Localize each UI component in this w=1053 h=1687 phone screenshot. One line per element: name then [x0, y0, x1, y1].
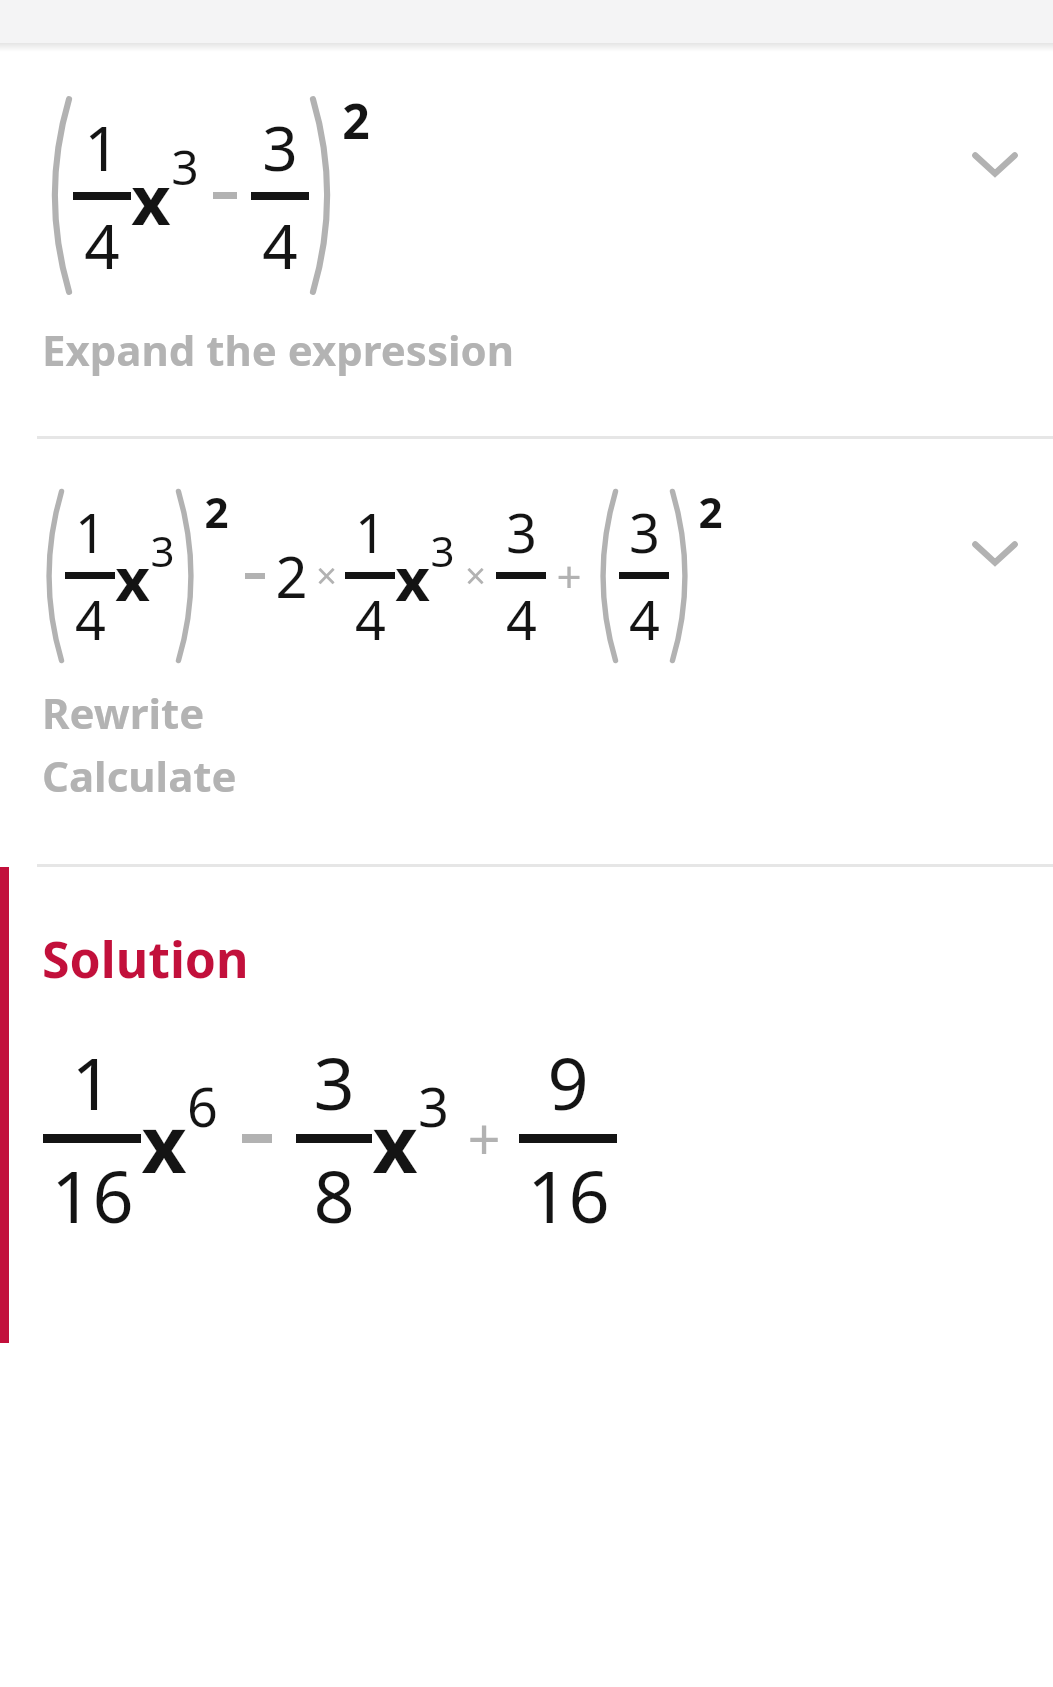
staticText: 3	[150, 522, 175, 579]
staticText: +	[556, 546, 582, 606]
staticText: x	[395, 537, 430, 619]
staticText: 3	[313, 1033, 355, 1131]
button[interactable]: Collapse step	[959, 517, 1031, 589]
staticText: Rewrite	[42, 684, 205, 741]
staticText: Calculate	[42, 747, 237, 804]
staticText: 4	[629, 582, 660, 656]
staticText: 3	[506, 495, 537, 569]
staticText: 1	[75, 495, 106, 569]
staticText: 3	[262, 105, 298, 189]
staticText: 16	[527, 1146, 610, 1244]
staticText: ×	[316, 551, 337, 600]
staticText: Solution	[42, 925, 249, 993]
staticText: 4	[75, 582, 106, 656]
staticText: 16	[51, 1146, 134, 1244]
staticText: 4	[84, 203, 120, 287]
staticText: 1	[84, 105, 120, 189]
staticText: x	[141, 1090, 187, 1196]
staticText: 6	[187, 1069, 218, 1143]
staticText: 3	[629, 495, 660, 569]
staticText: ×	[465, 551, 486, 600]
staticText: 2	[204, 483, 229, 540]
button[interactable]: Solution	[0, 867, 1053, 1343]
staticText: 1	[71, 1033, 113, 1131]
staticText: 1	[355, 495, 386, 569]
staticText: 2	[275, 538, 308, 614]
staticText: 9	[547, 1033, 589, 1131]
staticText: 2	[342, 88, 370, 153]
staticText: 3	[171, 134, 199, 199]
staticText: Expand the expression	[42, 321, 515, 378]
staticText: x	[131, 152, 171, 245]
staticText: 8	[313, 1146, 355, 1244]
staticText: x	[115, 537, 150, 619]
staticText: x	[372, 1090, 418, 1196]
staticText: 3	[418, 1069, 449, 1143]
staticText: 2	[698, 483, 723, 540]
staticText: 4	[262, 203, 298, 287]
button[interactable]: 1	[0, 52, 1053, 436]
button[interactable]: Collapse step	[959, 128, 1031, 200]
staticText: 3	[430, 522, 455, 579]
staticText: +	[467, 1099, 501, 1178]
staticText: 4	[355, 582, 386, 656]
staticText: 4	[506, 582, 537, 656]
button[interactable]: 1	[0, 439, 1053, 864]
